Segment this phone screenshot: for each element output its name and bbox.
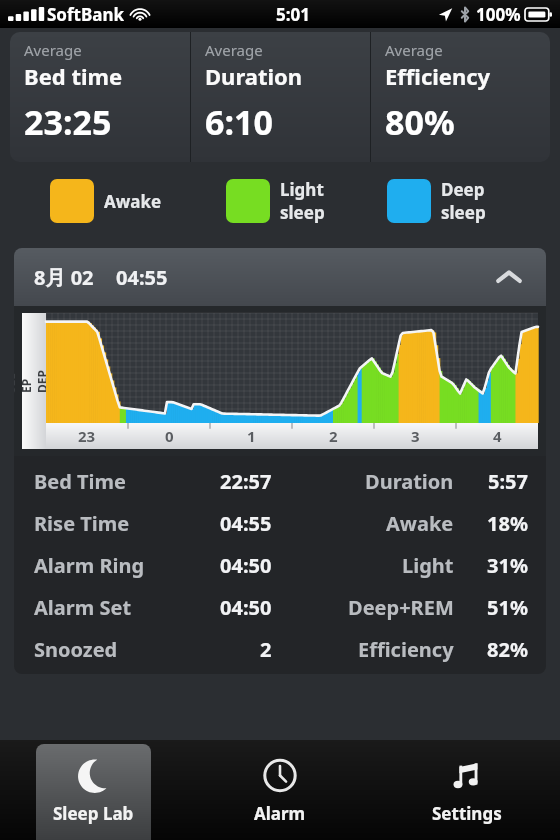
staticText: Duration bbox=[205, 61, 303, 91]
staticText: Duration bbox=[365, 468, 454, 495]
staticText: Average bbox=[24, 40, 82, 60]
staticText: 23 bbox=[78, 426, 96, 446]
button[interactable]: Average bbox=[371, 32, 550, 162]
button[interactable]: 8月 02 bbox=[14, 248, 546, 306]
staticText: 100% bbox=[476, 3, 521, 26]
staticText: 0 bbox=[165, 426, 174, 446]
staticText: Bed Time bbox=[34, 468, 127, 495]
staticText: 80% bbox=[385, 99, 455, 145]
button[interactable]: Rise Time bbox=[14, 502, 546, 544]
staticText: 2 bbox=[260, 636, 272, 663]
staticText: 04:50 bbox=[220, 594, 272, 621]
staticText: Deep bbox=[441, 178, 485, 201]
staticText: Awake bbox=[386, 510, 454, 537]
staticText: 82% bbox=[487, 636, 528, 663]
staticText: Alarm bbox=[254, 802, 306, 825]
button[interactable]: Average bbox=[10, 32, 190, 162]
staticText: Bed time bbox=[24, 61, 123, 91]
staticText: 04:55 bbox=[220, 510, 272, 537]
staticText: Efficiency bbox=[385, 61, 491, 91]
other: Collapse bbox=[492, 260, 526, 294]
staticText: 5:57 bbox=[488, 468, 528, 495]
staticText: Sleep Lab bbox=[53, 802, 134, 825]
staticText: Settings bbox=[432, 802, 502, 825]
staticText: 51% bbox=[487, 594, 528, 621]
button[interactable]: Average bbox=[191, 32, 370, 162]
staticText: Efficiency bbox=[358, 636, 454, 663]
button[interactable]: Alarm bbox=[222, 744, 337, 840]
staticText: Awake bbox=[104, 190, 162, 213]
staticText: Rise Time bbox=[34, 510, 130, 537]
staticText: SLEEP DEPTH bbox=[14, 369, 66, 393]
staticText: 2 bbox=[329, 426, 338, 446]
button[interactable]: Snoozed bbox=[14, 628, 546, 670]
staticText: 5:01 bbox=[276, 3, 310, 26]
staticText: sleep bbox=[441, 201, 486, 224]
staticText: 8月 02 bbox=[34, 264, 94, 291]
staticText: 4 bbox=[493, 426, 502, 446]
staticText: 1 bbox=[247, 426, 256, 446]
staticText: Light bbox=[280, 178, 324, 201]
button[interactable]: Settings bbox=[409, 744, 524, 840]
staticText: Average bbox=[385, 40, 443, 60]
staticText: Alarm Ring bbox=[34, 552, 145, 579]
staticText: 04:55 bbox=[116, 264, 168, 291]
button[interactable]: Bed Time bbox=[14, 460, 546, 502]
staticText: 6:10 bbox=[205, 99, 273, 145]
button[interactable]: Alarm Set bbox=[14, 586, 546, 628]
staticText: 23:25 bbox=[24, 99, 112, 145]
staticText: sleep bbox=[280, 201, 325, 224]
staticText: 22:57 bbox=[220, 468, 272, 495]
staticText: 18% bbox=[487, 510, 528, 537]
staticText: Alarm Set bbox=[34, 594, 132, 621]
staticText: 04:50 bbox=[220, 552, 272, 579]
button[interactable]: Sleep Lab bbox=[36, 744, 151, 840]
staticText: 31% bbox=[487, 552, 528, 579]
button[interactable]: Alarm Ring bbox=[14, 544, 546, 586]
staticText: Average bbox=[205, 40, 263, 60]
staticText: SoftBank bbox=[47, 3, 125, 26]
staticText: 3 bbox=[411, 426, 420, 446]
staticText: Deep+REM bbox=[348, 594, 454, 621]
staticText: Snoozed bbox=[34, 636, 118, 663]
staticText: Light bbox=[402, 552, 454, 579]
